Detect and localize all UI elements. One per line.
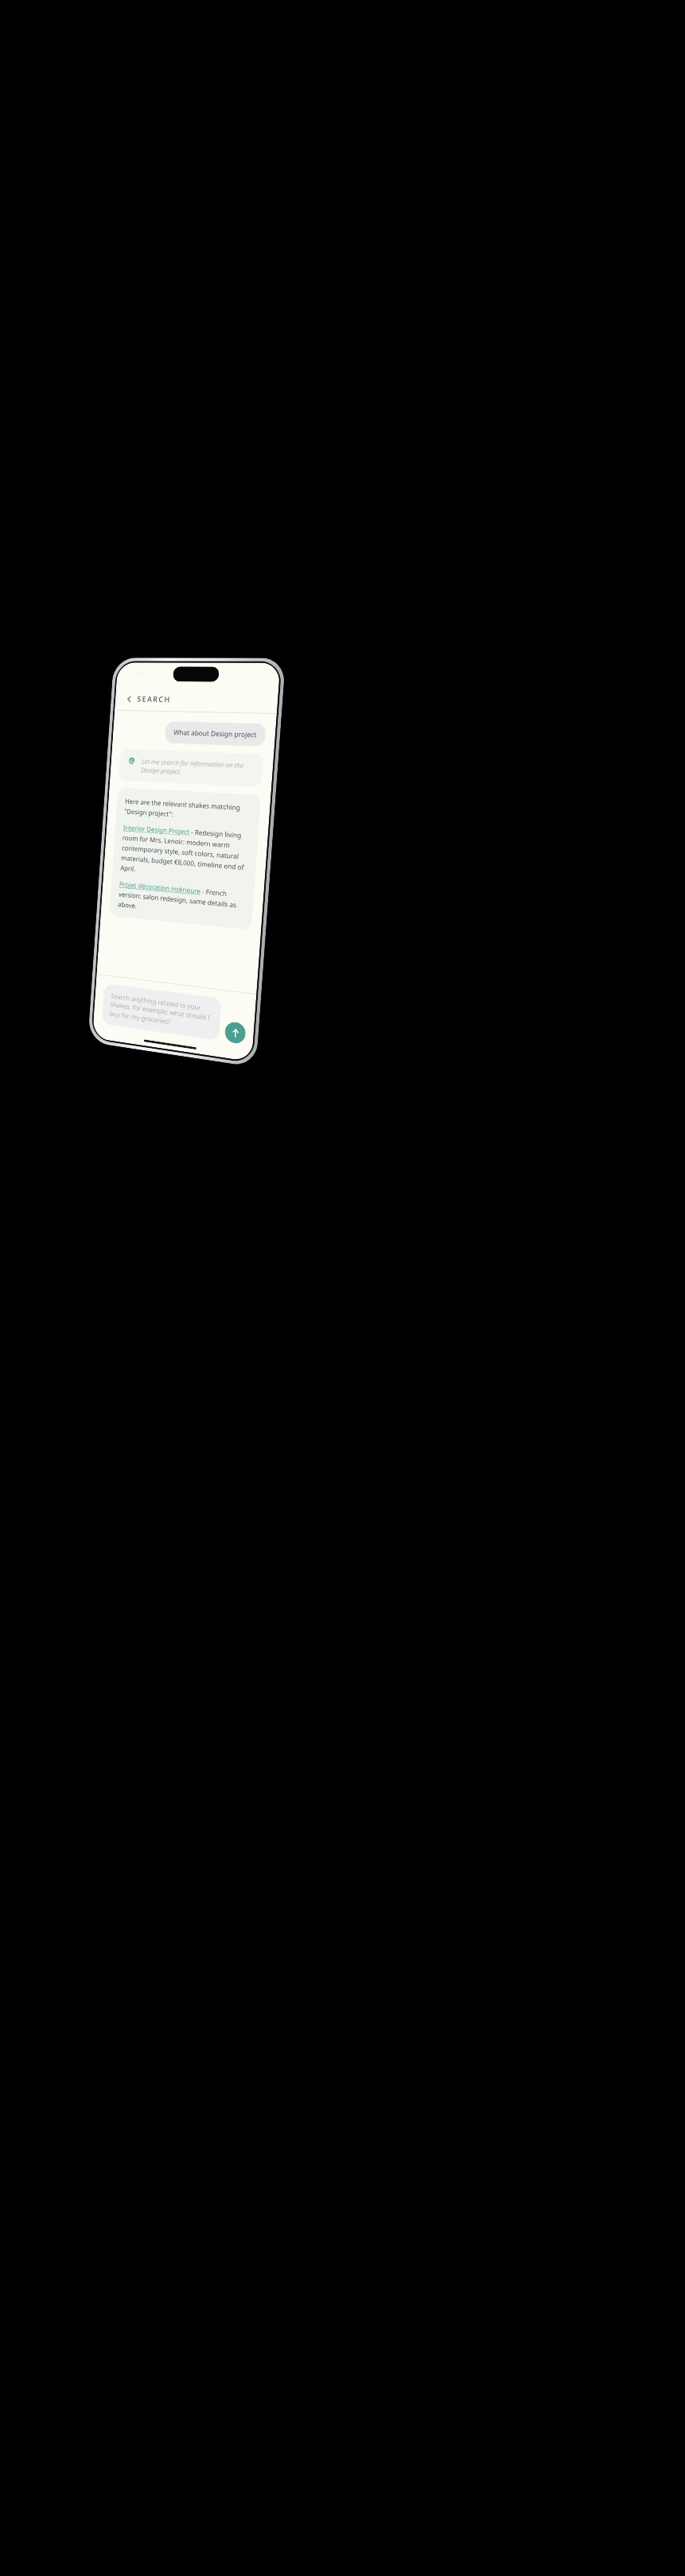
- staticText: Here are the relevant shakes matching "D…: [124, 796, 252, 823]
- staticText: What about Design project: [173, 728, 257, 740]
- button[interactable]: Thinking: [118, 749, 264, 788]
- staticText: Let me search for information on the Des…: [141, 757, 255, 780]
- button[interactable]: What about Design project: [164, 721, 266, 747]
- staticText: Search anything related to your shakes, …: [109, 991, 214, 1033]
- staticText: Projet décoration intérieure - French ve…: [118, 879, 245, 920]
- button[interactable]: SEARCH: [115, 690, 278, 713]
- other: Thinking: [128, 756, 136, 765]
- button[interactable]: Search anything related to your shakes, …: [102, 983, 222, 1041]
- button[interactable]: Here are the relevant shakes matching "D…: [109, 788, 261, 930]
- staticText: SEARCH: [137, 694, 172, 705]
- button[interactable]: Send: [224, 1021, 246, 1045]
- staticText: Interior Design Project - Redesign livin…: [120, 823, 250, 882]
